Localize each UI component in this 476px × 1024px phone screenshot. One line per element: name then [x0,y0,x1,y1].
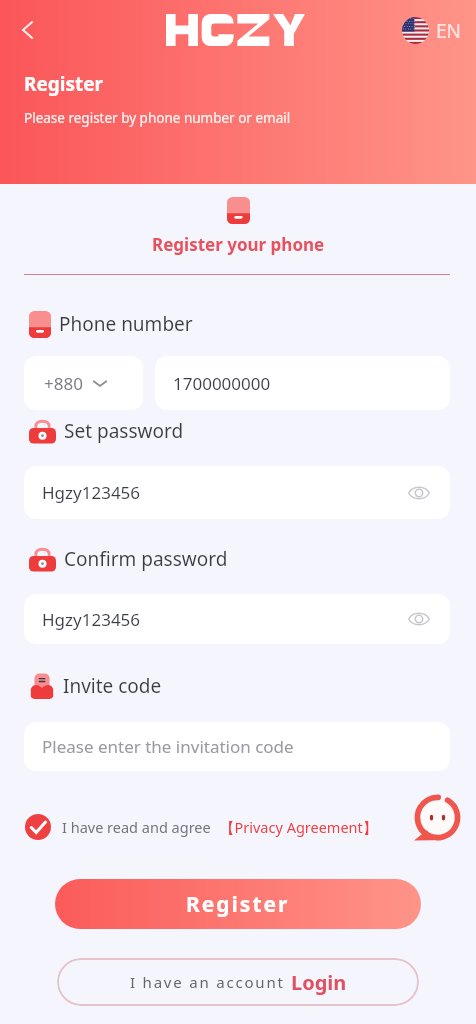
button[interactable]: Language English [397,12,472,49]
button[interactable]: Hgzy123456 [24,594,450,644]
button[interactable]: Toggle password visibility [404,604,434,634]
button[interactable]: I have read and agree [25,812,378,842]
staticText: Please enter the invitation code [42,735,294,758]
staticText: Set password [64,418,184,444]
button[interactable]: Customer service chat [413,793,462,842]
staticText: Invite code [63,673,162,699]
button[interactable]: Hgzy123456 [24,466,450,519]
staticText: Register [186,890,290,919]
button[interactable]: Back [9,12,45,48]
staticText: Hgzy123456 [42,481,141,504]
button[interactable]: Toggle password visibility [404,478,434,508]
button[interactable]: 1700000000 [155,356,450,410]
staticText: +880 [44,372,83,395]
staticText: I have an account [130,972,285,992]
staticText: Register [24,71,104,97]
button[interactable]: I have an account [57,958,419,1006]
staticText: Phone number [59,311,193,337]
staticText: Please register by phone number or email [24,109,291,127]
staticText: Confirm password [64,546,228,572]
staticText: 【Privacy Agreement】 [220,817,378,837]
staticText: EN [436,18,462,44]
staticText: Login [291,969,347,996]
staticText: Hgzy123456 [42,608,141,631]
staticText: I have read and agree [62,817,211,837]
button[interactable]: Please enter the invitation code [24,722,450,771]
staticText: Register your phone [152,233,325,256]
button[interactable]: +880 [24,356,143,410]
staticText: 1700000000 [173,372,271,395]
button[interactable]: Register [55,879,421,929]
